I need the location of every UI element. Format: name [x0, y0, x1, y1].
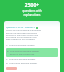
- staticText: 2500+: [0, 2, 64, 9]
- staticText: Question 7 of 25 · Chapter 3: [6, 26, 35, 29]
- staticText: B. The second possible answer which is t…: [7, 50, 39, 55]
- button[interactable]: A. The first possible answer: [6, 44, 58, 47]
- button[interactable]: B. The second possible answer which is t…: [6, 48, 58, 57]
- button[interactable]: [6, 67, 17, 70]
- staticText: Which of the following statements about …: [6, 29, 42, 40]
- button[interactable]: D. The fourth possible answer: [6, 62, 58, 65]
- staticText: questions with explanations: [0, 9, 64, 17]
- button[interactable]: C. The third possible answer: [6, 58, 58, 61]
